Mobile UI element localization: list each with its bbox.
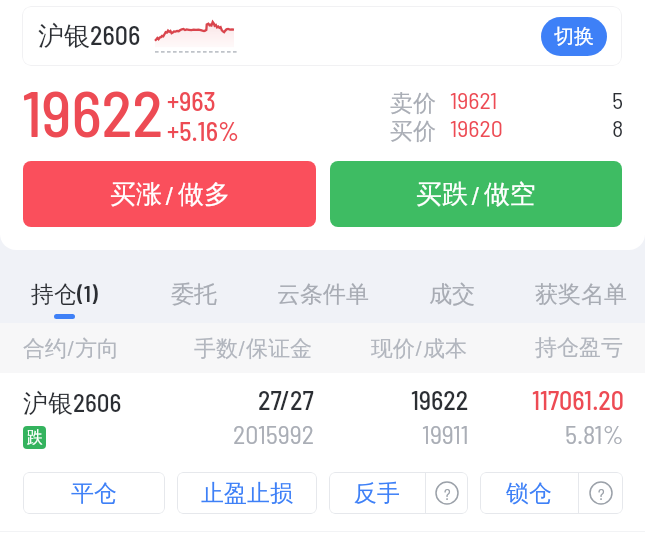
staticText: 8 [612,113,624,142]
staticText: 平仓 [71,479,117,508]
staticText: ? [598,484,605,503]
staticText: 5 [612,85,624,114]
staticText: 19622 [411,384,469,415]
staticText: / [165,179,175,210]
staticText: 沪银2606 [38,19,141,53]
staticText: 反手 [354,479,400,508]
staticText: 做空 [484,178,536,211]
button[interactable]: 持仓(1) [0,250,129,323]
staticText: 委托 [171,280,217,309]
button[interactable]: 止盈止损 [177,472,317,514]
staticText: 19621 [450,85,498,114]
button[interactable]: 委托 [129,250,258,323]
staticText: 切换 [554,24,594,49]
staticText: 27/27 [258,384,314,415]
staticText: 19622 [22,73,164,150]
button[interactable]: 获奖名单 [516,250,645,323]
button[interactable]: Help [579,472,623,514]
staticText: 买涨 [110,178,162,211]
staticText: 2015992 [233,418,314,449]
staticText: 5.81% [565,418,624,449]
button[interactable]: 买跌 [330,161,622,227]
button[interactable]: 反手 [329,472,425,514]
staticText: +5.16% [167,115,239,146]
staticText: / [471,179,481,210]
button[interactable]: 锁仓 [480,472,578,514]
button[interactable]: 沪银2606 [0,373,645,472]
staticText: 持仓盈亏 [535,334,623,362]
staticText: 止盈止损 [201,479,293,508]
staticText: 成交 [429,280,475,309]
staticText: 做多 [178,178,230,211]
staticText: 现价/成本 [371,334,468,363]
staticText: 卖价 [390,89,436,118]
staticText: 云条件单 [277,280,369,309]
staticText: ? [444,484,451,503]
staticText: 19911 [422,418,469,449]
staticText: 117061.20 [532,384,624,415]
button[interactable]: 成交 [387,250,516,323]
button[interactable]: 沪银2606 [22,6,622,66]
button[interactable]: 切换 [541,17,607,56]
button[interactable]: 买涨 [23,161,316,227]
button[interactable]: Help [426,472,468,514]
staticText: 持仓(1) [31,279,98,309]
staticText: 19620 [450,113,503,142]
staticText: 获奖名单 [535,280,627,309]
staticText: 沪银2606 [23,387,122,419]
staticText: 跌 [27,428,43,448]
staticText: 合约/方向 [23,334,120,363]
staticText: 锁仓 [506,479,552,508]
staticText: 手数/保证金 [194,334,313,363]
button[interactable]: 平仓 [23,472,165,514]
staticText: 买价 [390,117,436,146]
button[interactable]: 云条件单 [258,250,387,323]
staticText: 买跌 [416,178,468,211]
staticText: +963 [167,85,216,116]
